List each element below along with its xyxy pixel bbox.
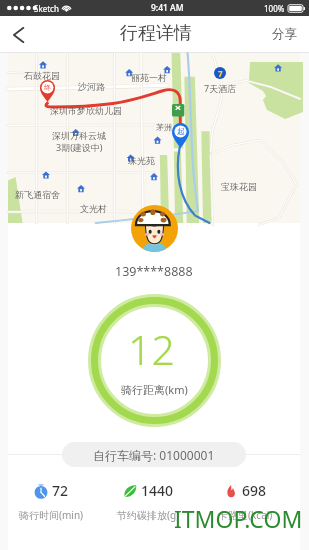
staticText: 3期(建设中)	[56, 141, 103, 153]
staticText: 行程详情	[120, 22, 192, 45]
staticText: 文光村	[80, 203, 107, 214]
staticText: 139****8888	[115, 263, 193, 280]
staticText: 72	[52, 481, 69, 500]
button[interactable]: 自行车编号: 01000001	[62, 442, 246, 467]
staticText: 骑行距离(km)	[121, 382, 188, 397]
staticText: 沙河路	[78, 81, 105, 92]
staticText: 分享	[272, 26, 297, 42]
button[interactable]: 698	[197, 479, 294, 524]
staticText: 深圳市梦欣幼儿园	[50, 105, 122, 116]
staticText: 1440	[141, 481, 174, 500]
staticText: 7天酒店	[204, 82, 237, 94]
staticText: 自行车编号: 01000001	[93, 447, 215, 463]
staticText: 终	[44, 83, 52, 92]
staticText: 珠光苑	[128, 155, 155, 166]
button[interactable]: 1440	[100, 479, 197, 524]
staticText: 宝珠花园	[221, 181, 257, 192]
staticText: 9:41 AM	[151, 2, 184, 14]
staticText: 骑行时间(min)	[19, 508, 84, 522]
staticText: 节约碳排放(g)	[117, 508, 180, 522]
staticText: 12	[128, 321, 175, 377]
staticText: Sketch	[34, 3, 59, 14]
staticText: 茅洲	[156, 122, 172, 132]
button[interactable]: 72	[2, 479, 100, 524]
staticText: 新飞通宿舍	[15, 189, 60, 200]
staticText: 石鼓花园	[24, 70, 60, 81]
staticText: 698	[242, 481, 267, 500]
button[interactable]: Back	[0, 16, 36, 53]
staticText: 起	[177, 126, 185, 136]
staticText: ITMOP.COM	[174, 503, 303, 534]
staticText: 卡路里(kcal)	[218, 508, 273, 522]
staticText: 100%	[264, 3, 285, 14]
staticText: 7	[218, 68, 223, 79]
staticText: 丽苑一村	[131, 72, 167, 83]
staticText: 深圳万科云城	[52, 130, 106, 141]
button[interactable]: 分享	[258, 16, 309, 53]
